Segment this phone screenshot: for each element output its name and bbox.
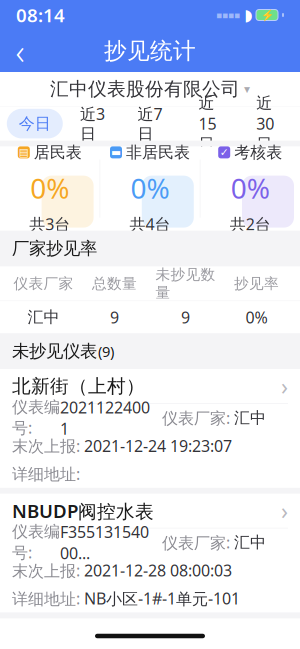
staticText: NB小区-1#-1单元-101 bbox=[84, 588, 240, 609]
staticText: ⚡ bbox=[260, 9, 273, 21]
button[interactable]: 近3日 bbox=[64, 98, 121, 149]
staticText: ◗ bbox=[244, 6, 252, 24]
staticText: 仪表编号: bbox=[12, 397, 60, 438]
staticText: 详细地址: bbox=[12, 463, 84, 484]
staticText: › bbox=[281, 496, 288, 526]
staticText: ▪▪▪▪ bbox=[216, 10, 240, 20]
staticText: ✓ bbox=[220, 146, 229, 158]
staticText: 近15日 bbox=[199, 93, 217, 154]
staticText: F35513154000... bbox=[60, 521, 149, 564]
staticText: 北新街（上村） bbox=[12, 375, 145, 398]
button[interactable]: 近15日 bbox=[179, 88, 236, 159]
staticText: 详细地址: bbox=[12, 588, 84, 609]
staticText: 总数量 bbox=[92, 275, 137, 293]
staticText: 20211224001 bbox=[60, 397, 150, 439]
button[interactable]: 汇中仪表股份有限公司 bbox=[0, 72, 300, 106]
staticText: 抄见率 bbox=[234, 275, 279, 293]
button[interactable]: 近7日 bbox=[121, 98, 179, 149]
staticText: ▾ bbox=[244, 82, 250, 96]
staticText: 共3台 bbox=[29, 213, 70, 235]
button[interactable]: 今日 bbox=[6, 109, 64, 138]
staticText: 仪表厂家 bbox=[13, 275, 73, 293]
staticText: NBUDP阀控水表 bbox=[12, 498, 154, 523]
staticText: 今日 bbox=[19, 114, 51, 133]
staticText: 0% bbox=[130, 169, 169, 206]
staticText: 末次上报: bbox=[12, 435, 84, 456]
staticText: 汇中仪表股份有限公司 bbox=[50, 77, 240, 100]
staticText: 0% bbox=[245, 307, 267, 328]
button[interactable]: 近30日 bbox=[236, 88, 294, 159]
staticText: 近30日 bbox=[256, 93, 274, 154]
staticText: ‹ bbox=[15, 28, 24, 74]
staticText: 9 bbox=[181, 307, 190, 328]
staticText: 08:14 bbox=[16, 3, 65, 27]
staticText: 2021-12-28 08:00:03 bbox=[84, 560, 232, 581]
button[interactable]: NBUDP阀控水表 bbox=[0, 494, 300, 612]
staticText: 汇中 bbox=[234, 408, 266, 428]
staticText: 近7日 bbox=[137, 103, 162, 144]
staticText: 厂家抄见率 bbox=[12, 238, 97, 259]
staticText: 汇中 bbox=[234, 533, 266, 552]
staticText: 抄见统计 bbox=[104, 37, 196, 65]
staticText: 非居民表 bbox=[126, 143, 190, 162]
staticText: 末次上报: bbox=[12, 560, 84, 581]
staticText: 9 bbox=[110, 307, 119, 328]
staticText: 未抄见仪表 bbox=[12, 341, 97, 362]
staticText: 0% bbox=[231, 169, 270, 206]
staticText: 近3日 bbox=[80, 103, 105, 144]
staticText: 共2台 bbox=[230, 213, 271, 235]
staticText: 汇中 bbox=[27, 307, 59, 327]
staticText: ▤ bbox=[19, 146, 29, 158]
staticText: 仪表编号: bbox=[12, 522, 60, 563]
staticText: › bbox=[281, 371, 288, 401]
staticText: 仪表厂家: bbox=[162, 532, 234, 553]
button[interactable]: Back bbox=[0, 31, 40, 71]
staticText: ▬ bbox=[111, 146, 121, 158]
staticText: 考核表 bbox=[234, 143, 282, 162]
staticText: 居民表 bbox=[34, 143, 82, 162]
staticText: 仪表厂家: bbox=[162, 407, 234, 428]
staticText: 共4台 bbox=[129, 213, 170, 235]
staticText: (9) bbox=[98, 341, 114, 361]
staticText: 0% bbox=[30, 169, 69, 206]
button[interactable]: 北新街（上村） bbox=[0, 369, 300, 488]
staticText: 2021-12-24 19:23:07 bbox=[84, 435, 232, 456]
staticText: 未抄见数量 bbox=[155, 266, 215, 302]
